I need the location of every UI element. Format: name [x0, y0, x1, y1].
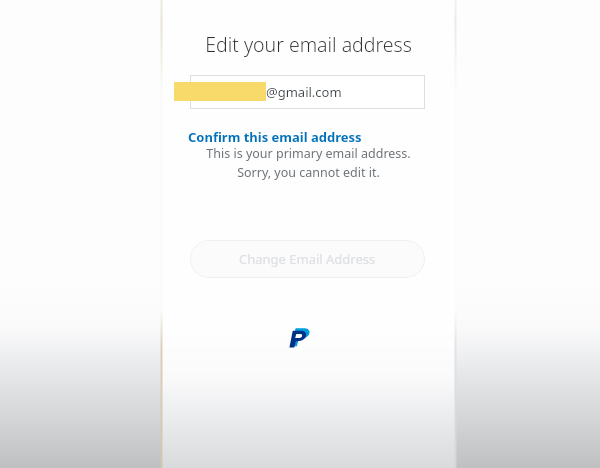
- other: PayPal: [289, 326, 311, 348]
- button[interactable]: Confirm this email address: [188, 128, 362, 146]
- staticText: Change Email Address: [239, 250, 376, 268]
- staticText: This is your primary email address.: [162, 145, 455, 162]
- staticText: Sorry, you cannot edit it.: [162, 164, 455, 181]
- button[interactable]: @gmail.com: [190, 75, 425, 109]
- button[interactable]: Change Email Address: [190, 240, 425, 278]
- staticText: Confirm this email address: [188, 128, 362, 146]
- staticText: Edit your email address: [162, 31, 455, 58]
- staticText: @gmail.com: [266, 83, 342, 101]
